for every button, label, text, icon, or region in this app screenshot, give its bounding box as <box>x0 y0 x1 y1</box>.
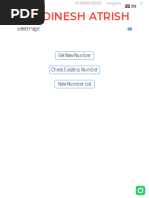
staticText: New Number List <box>58 81 91 87</box>
button[interactable]: Check Existing Number <box>49 66 100 74</box>
staticText: +91 99999 00000 <box>74 1 101 5</box>
staticText: info@dineshatrish.com <box>106 1 143 5</box>
staticText: PDF <box>10 6 38 21</box>
staticText: EN <box>131 4 136 9</box>
button[interactable]: Get New Number <box>55 52 94 60</box>
button[interactable]: +91 99999 00000 <box>74 1 101 5</box>
button[interactable]: info@dineshatrish.com <box>106 1 143 5</box>
button[interactable]: Menu <box>127 27 132 31</box>
button[interactable]: Language: English <box>121 2 140 10</box>
button[interactable]: New Number List <box>54 80 94 88</box>
button[interactable]: Chat on WhatsApp <box>135 185 145 195</box>
staticText: Select Page <box>17 26 39 32</box>
staticText: Check Existing Number <box>51 67 98 72</box>
staticText: Get New Number <box>58 53 91 58</box>
staticText: DINESH ATRISH <box>42 10 130 23</box>
